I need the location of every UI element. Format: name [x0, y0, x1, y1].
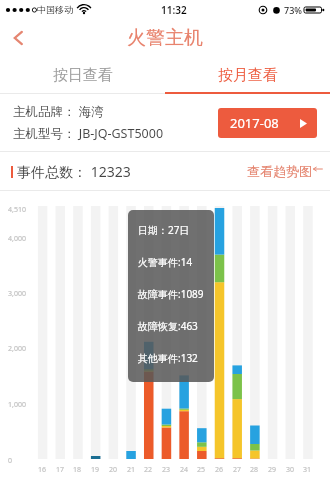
staticText: 日期：27日	[138, 223, 190, 237]
staticText: 查看趋势图	[247, 163, 312, 179]
staticText: 27	[233, 465, 242, 475]
staticText: 按月查看	[218, 66, 278, 85]
staticText: 按日查看	[53, 66, 113, 85]
staticText: 1,000	[8, 400, 26, 410]
staticText: 21	[127, 465, 136, 475]
staticText: 73%	[284, 4, 302, 16]
staticText: 4,510	[8, 205, 26, 215]
staticText: 20	[109, 465, 118, 475]
button[interactable]: Back	[2, 22, 34, 54]
staticText: 16	[38, 465, 47, 475]
staticText: 29	[268, 465, 277, 475]
staticText: 0	[8, 456, 13, 466]
staticText: 主机品牌： 海湾	[13, 103, 104, 120]
staticText: 17	[56, 465, 65, 475]
staticText: 故障恢复:463	[138, 319, 198, 333]
button[interactable]: 按日查看	[0, 57, 165, 94]
staticText: 19	[91, 465, 100, 475]
staticText: 火警主机	[127, 26, 203, 50]
staticText: 中国移动	[37, 4, 73, 15]
staticText: 25	[197, 465, 206, 475]
staticText: 故障事件:1089	[138, 287, 204, 301]
staticText: 18	[73, 465, 82, 475]
staticText: 28	[250, 465, 259, 475]
staticText: 事件总数： 12323	[17, 162, 131, 181]
staticText: 4,000	[8, 234, 26, 244]
staticText: 24	[180, 465, 189, 475]
staticText: 火警事件:14	[138, 255, 193, 269]
button[interactable]: 查看趋势图	[247, 163, 323, 179]
staticText: 2,000	[8, 344, 26, 354]
staticText: 11:32	[161, 3, 187, 17]
staticText: 其他事件:132	[138, 351, 198, 365]
staticText: 22	[144, 465, 153, 475]
staticText: 3,000	[8, 289, 26, 299]
staticText: 主机型号： JB-JQ-GST5000	[13, 125, 164, 142]
button[interactable]: 2017-08	[218, 108, 317, 138]
staticText: 23	[162, 465, 171, 475]
staticText: 2017-08	[230, 114, 279, 132]
button[interactable]: 按月查看	[165, 57, 330, 94]
staticText: 30	[286, 465, 295, 475]
staticText: 31	[303, 465, 312, 475]
button[interactable]: 日期：27日	[128, 210, 214, 382]
staticText: 26	[215, 465, 224, 475]
